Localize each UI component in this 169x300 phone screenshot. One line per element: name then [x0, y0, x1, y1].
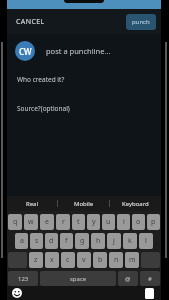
- button[interactable]: Real: [7, 196, 57, 211]
- staticText: h: [96, 236, 101, 246]
- staticText: r: [62, 217, 65, 227]
- button[interactable]: x: [45, 252, 59, 268]
- staticText: #: [148, 275, 152, 283]
- staticText: o: [136, 217, 141, 227]
- staticText: v: [82, 255, 86, 265]
- staticText: Keyboard: [122, 200, 149, 208]
- button[interactable]: punch: [126, 14, 156, 30]
- staticText: CW: [19, 46, 32, 57]
- staticText: z: [34, 255, 38, 265]
- staticText: d: [49, 236, 54, 246]
- staticText: a: [20, 236, 24, 246]
- button[interactable]: Who created it?: [17, 75, 151, 84]
- staticText: @: [125, 275, 131, 283]
- staticText: n: [114, 255, 119, 265]
- button[interactable]: k: [123, 233, 137, 249]
- button[interactable]: f: [60, 233, 73, 249]
- button[interactable]: Keyboard: [110, 196, 161, 211]
- staticText: m: [129, 255, 136, 265]
- button[interactable]: y: [87, 214, 100, 230]
- button[interactable]: c: [61, 252, 75, 268]
- button[interactable]: g: [75, 233, 89, 249]
- staticText: t: [77, 217, 80, 227]
- staticText: s: [35, 236, 39, 246]
- button[interactable]: a: [15, 233, 28, 249]
- staticText: b: [98, 255, 103, 265]
- staticText: space: [70, 275, 87, 283]
- staticText: Source?(optional): [17, 104, 70, 113]
- staticText: e: [45, 217, 49, 227]
- button[interactable]: p: [147, 214, 160, 230]
- button[interactable]: t: [72, 214, 85, 230]
- staticText: 123: [18, 275, 29, 283]
- button[interactable]: u: [102, 214, 115, 230]
- button[interactable]: #: [140, 271, 160, 286]
- staticText: i: [123, 217, 125, 227]
- staticText: f: [65, 236, 68, 246]
- button[interactable]: CANCEL: [12, 13, 49, 31]
- button[interactable]: r: [56, 214, 70, 230]
- button[interactable]: n: [109, 252, 123, 268]
- button[interactable]: Recents: [145, 288, 154, 299]
- button[interactable]: v: [77, 252, 91, 268]
- button[interactable]: Mobile: [58, 196, 109, 211]
- button[interactable]: s: [30, 233, 43, 249]
- button[interactable]: Emoji: [12, 288, 22, 298]
- staticText: Mobile: [74, 200, 94, 208]
- staticText: y: [92, 217, 96, 227]
- staticText: g: [80, 236, 85, 246]
- button[interactable]: d: [45, 233, 58, 249]
- button[interactable]: m: [125, 252, 139, 268]
- button[interactable]: l: [139, 233, 153, 249]
- staticText: c: [66, 255, 70, 265]
- staticText: u: [106, 217, 111, 227]
- staticText: p: [151, 217, 156, 227]
- button[interactable]: space: [40, 271, 116, 286]
- button[interactable]: 123: [8, 271, 38, 286]
- button[interactable]: @: [118, 271, 138, 286]
- staticText: k: [128, 236, 132, 246]
- staticText: CANCEL: [16, 17, 45, 27]
- button[interactable]: b: [93, 252, 107, 268]
- staticText: punch: [132, 18, 150, 26]
- staticText: Real: [26, 200, 39, 208]
- staticText: j: [113, 236, 115, 246]
- button[interactable]: h: [91, 233, 105, 249]
- button[interactable]: j: [107, 233, 121, 249]
- button[interactable]: w: [24, 214, 38, 230]
- button[interactable]: o: [132, 214, 145, 230]
- button[interactable]: Source?(optional): [17, 104, 151, 113]
- staticText: q: [13, 217, 18, 227]
- staticText: l: [145, 236, 147, 246]
- button[interactable]: e: [40, 214, 54, 230]
- staticText: x: [50, 255, 54, 265]
- button[interactable]: q: [8, 214, 22, 230]
- button[interactable]: i: [117, 214, 130, 230]
- staticText: post a punchline...: [46, 46, 111, 56]
- button[interactable]: z: [29, 252, 43, 268]
- staticText: w: [28, 217, 34, 227]
- button[interactable]: post a punchline...: [46, 46, 153, 56]
- staticText: Who created it?: [17, 75, 65, 84]
